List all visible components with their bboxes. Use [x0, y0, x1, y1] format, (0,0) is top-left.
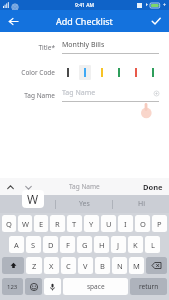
staticText: Color Code	[21, 68, 55, 77]
button[interactable]: Backspace	[146, 257, 167, 274]
button[interactable]: M	[129, 257, 144, 274]
button[interactable]: Next field	[23, 182, 33, 192]
staticText: J	[117, 240, 120, 250]
staticText: Yes	[79, 199, 90, 209]
button[interactable]: U	[101, 215, 116, 232]
button[interactable]: Color swatch	[147, 65, 159, 80]
staticText: space	[87, 282, 105, 291]
staticText: 9:41 AM	[75, 2, 95, 9]
button[interactable]: 123	[2, 278, 23, 295]
staticText: Tag Name	[69, 182, 100, 191]
button[interactable]: L	[145, 236, 160, 253]
staticText: return	[139, 282, 159, 291]
staticText: F	[66, 240, 70, 250]
staticText: +	[163, 2, 166, 9]
staticText: 123	[7, 283, 18, 291]
staticText: O	[140, 219, 146, 229]
button[interactable]: Tag Name	[62, 88, 159, 102]
button[interactable]: space	[63, 278, 128, 295]
button[interactable]: Color swatch	[96, 65, 108, 80]
staticText: R	[55, 219, 60, 229]
button[interactable]: H	[94, 236, 109, 253]
button[interactable]: Shift	[2, 257, 24, 274]
button[interactable]: F	[60, 236, 75, 253]
button[interactable]: B	[95, 257, 110, 274]
button[interactable]: Previous field	[5, 182, 15, 192]
button[interactable]: Yes	[56, 195, 112, 213]
staticText: C	[66, 261, 71, 271]
staticText: L	[151, 240, 155, 250]
staticText: V	[83, 261, 88, 271]
button[interactable]: Done	[143, 182, 163, 192]
button[interactable]: X	[44, 257, 59, 274]
button[interactable]: Emoji	[25, 278, 42, 295]
button[interactable]: Color swatch	[113, 65, 125, 80]
button[interactable]: Monthly Bills	[62, 40, 159, 54]
button[interactable]: S	[26, 236, 41, 253]
staticText: S	[31, 240, 36, 250]
staticText: G	[82, 240, 88, 250]
staticText: A	[14, 240, 19, 250]
staticText: I	[124, 219, 127, 229]
button[interactable]: Z	[26, 257, 42, 274]
button[interactable]: Y	[84, 215, 99, 232]
staticText: E	[39, 219, 44, 229]
staticText: N	[117, 261, 123, 271]
button[interactable]: Color swatch	[130, 65, 142, 80]
staticText: B	[100, 261, 105, 271]
staticText: M	[133, 261, 140, 271]
button[interactable]: G	[77, 236, 92, 253]
staticText: Tag Name	[24, 91, 55, 100]
staticText: K	[133, 240, 138, 250]
button[interactable]: return	[130, 278, 167, 295]
staticText: Y	[89, 219, 94, 229]
staticText: H	[99, 240, 105, 250]
staticText: T	[72, 219, 77, 229]
button[interactable]: R	[50, 215, 65, 232]
staticText: Hi	[138, 199, 145, 209]
staticText: Z	[32, 261, 37, 271]
button[interactable]: Dictation	[44, 278, 61, 295]
button[interactable]: Save	[147, 12, 165, 30]
button[interactable]: N	[112, 257, 127, 274]
button[interactable]: Hi	[113, 195, 169, 213]
staticText: U	[106, 219, 112, 229]
staticText: Q	[6, 219, 12, 229]
staticText: W	[27, 191, 39, 207]
button[interactable]: D	[43, 236, 58, 253]
staticText: P	[157, 219, 162, 229]
staticText: Monthly Bills	[62, 40, 105, 50]
staticText: Title*	[38, 43, 55, 52]
button[interactable]: O	[135, 215, 150, 232]
staticText: Tag Name	[62, 88, 154, 98]
staticText: W	[24, 199, 32, 210]
button[interactable]: P	[152, 215, 167, 232]
button[interactable]: W	[18, 215, 32, 232]
button[interactable]: J	[111, 236, 126, 253]
staticText: Add Checklist	[56, 15, 113, 27]
button[interactable]: W	[0, 195, 55, 213]
button[interactable]: Back	[4, 12, 22, 30]
button[interactable]: Q	[2, 215, 16, 232]
staticText: X	[49, 261, 54, 271]
button[interactable]: Color swatch	[79, 65, 91, 80]
button[interactable]: E	[34, 215, 48, 232]
button[interactable]: C	[61, 257, 76, 274]
staticText: Done	[143, 182, 163, 192]
button[interactable]: I	[118, 215, 133, 232]
button[interactable]: A	[9, 236, 24, 253]
staticText: D	[48, 240, 54, 250]
staticText: W	[22, 219, 29, 229]
button[interactable]: V	[78, 257, 93, 274]
button[interactable]: K	[128, 236, 143, 253]
button[interactable]: Color swatch	[62, 65, 74, 80]
button[interactable]: T	[67, 215, 82, 232]
